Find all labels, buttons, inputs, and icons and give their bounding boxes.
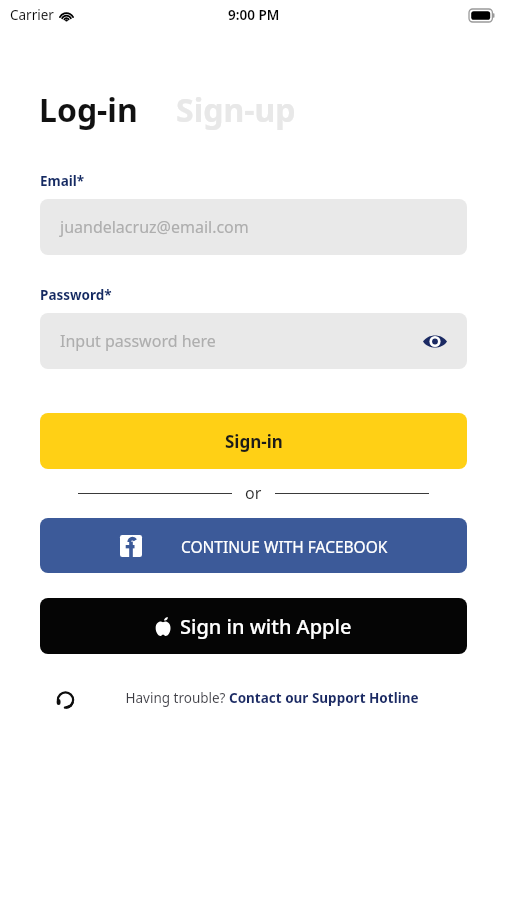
button[interactable]: CONTINUE WITH FACEBOOK [40,518,467,573]
staticText: Email* [40,172,85,190]
staticText: Input password here [60,330,216,352]
staticText: Having trouble? Contact our Support Hotl… [125,689,419,707]
button[interactable]: Having trouble? Contact our Support Hotl… [56,688,467,708]
button[interactable]: Sign-in [40,413,467,469]
staticText: juandelacruz@email.com [60,216,249,238]
button[interactable]: Log-in [39,88,138,132]
staticText: Password* [40,286,112,304]
button[interactable]: Sign-up [176,88,296,132]
staticText: Sign-up [176,88,296,132]
button[interactable]: Input password here [40,313,467,369]
staticText: Log-in [39,88,138,132]
staticText: CONTINUE WITH FACEBOOK [181,536,388,557]
staticText: or [245,482,262,504]
button[interactable]: Show password [420,326,450,356]
staticText: 9:00 PM [228,6,280,24]
staticText: Carrier [10,6,54,24]
staticText: Sign in with Apple [180,613,352,640]
button[interactable]: Sign in with Apple [40,598,467,654]
button[interactable]: juandelacruz@email.com [40,199,467,255]
staticText: Sign-in [225,430,283,453]
